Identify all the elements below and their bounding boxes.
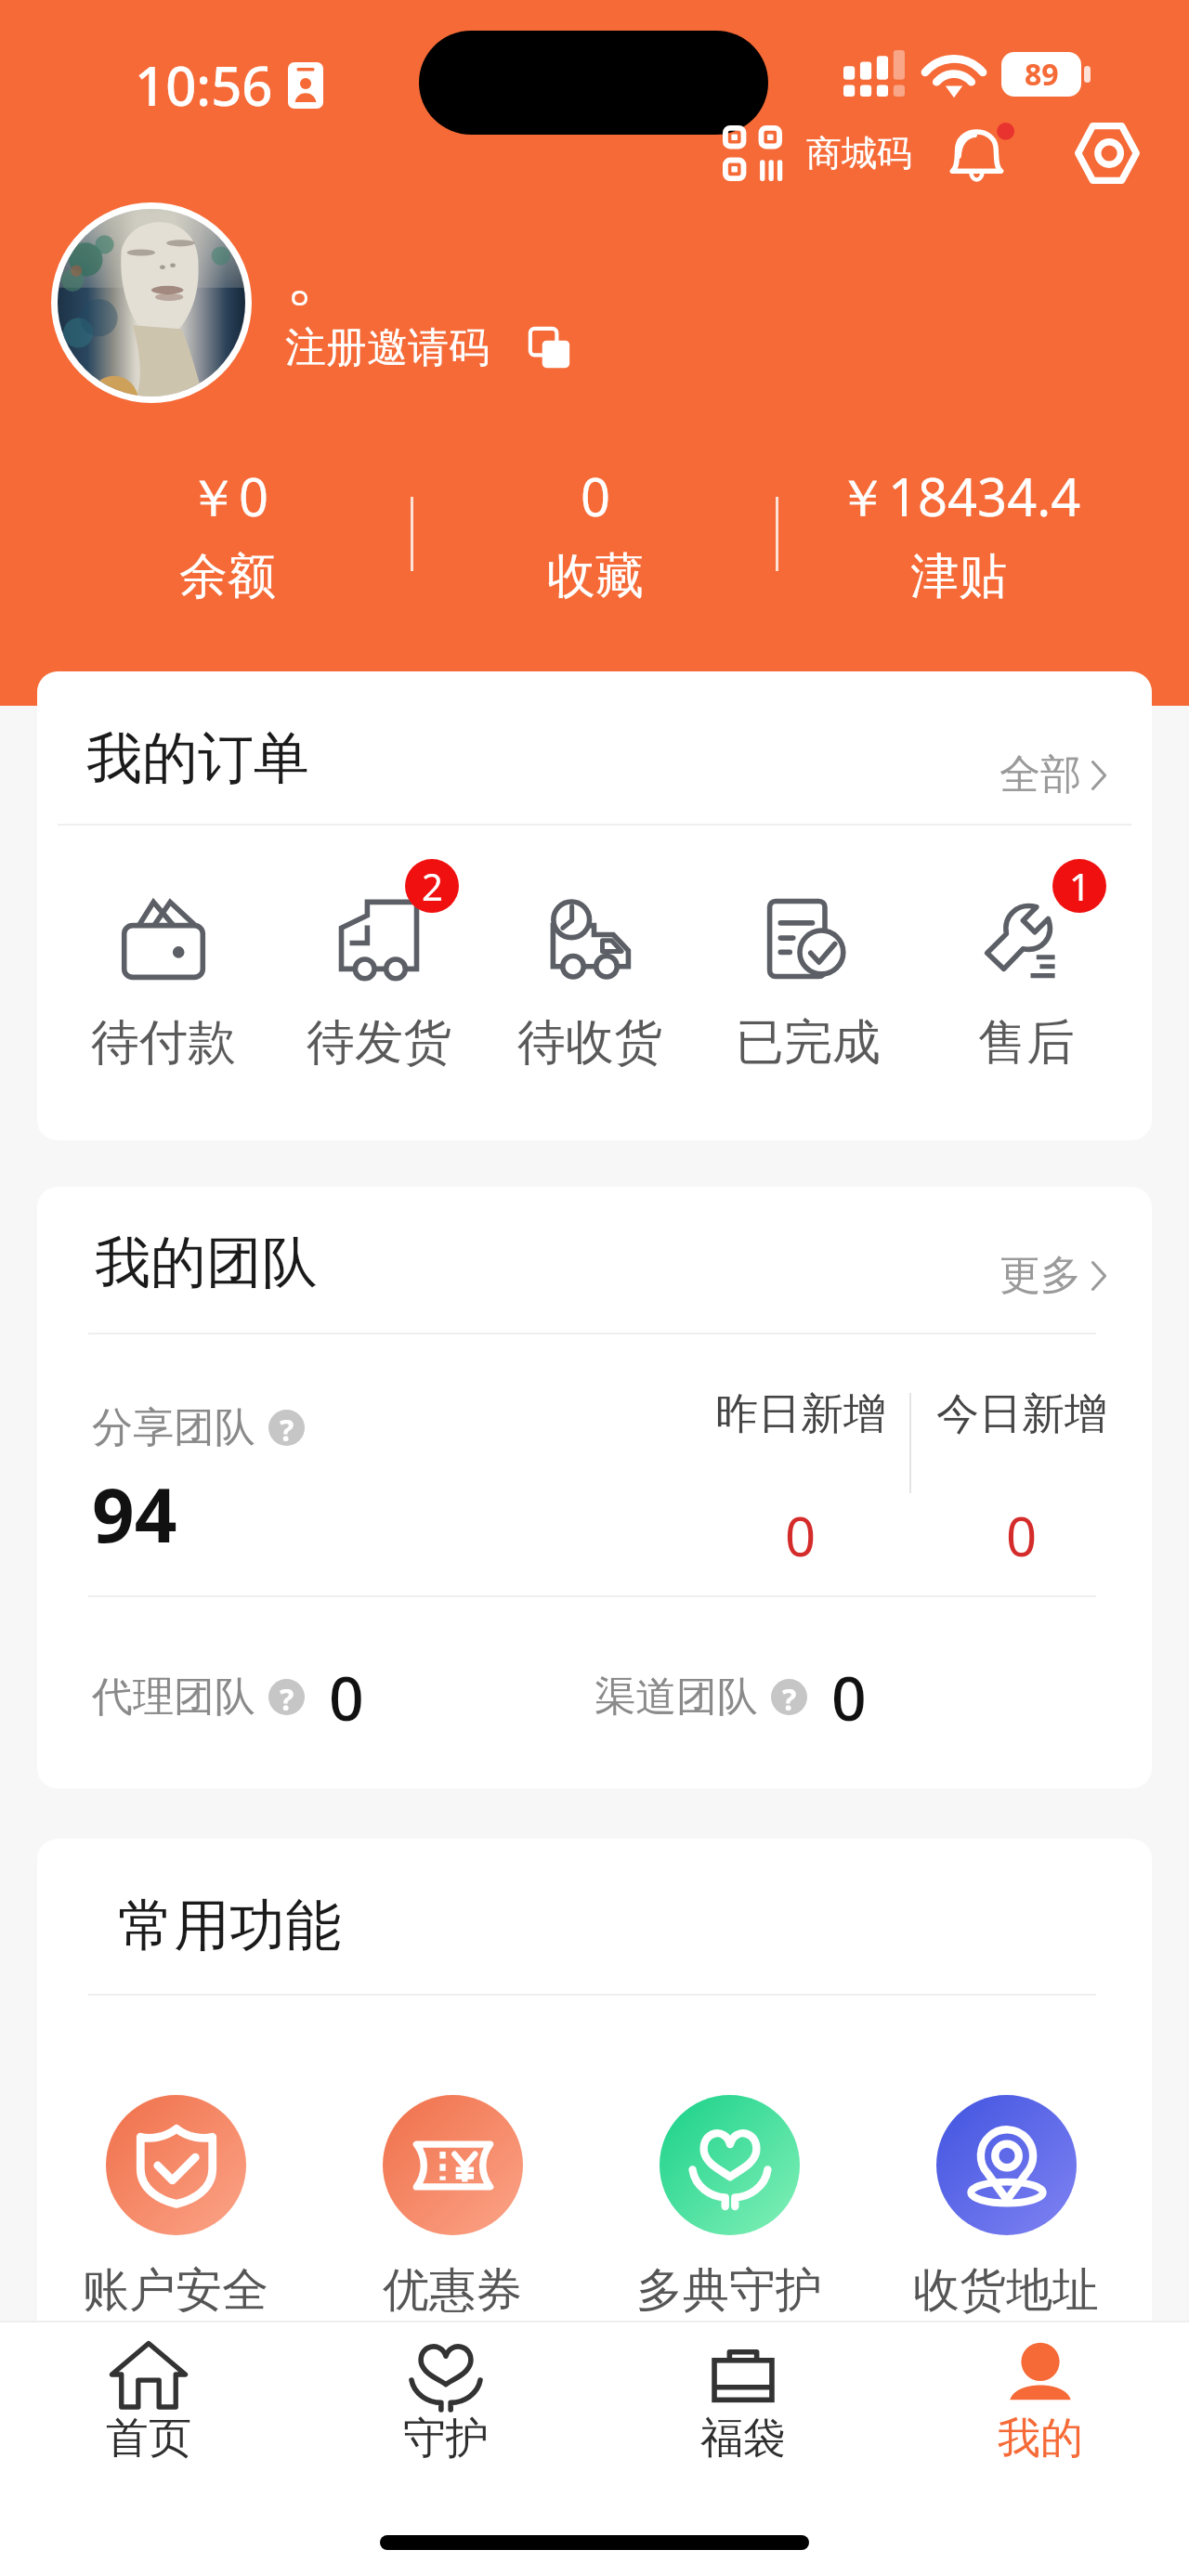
button[interactable]: Avatar	[58, 209, 245, 397]
button[interactable]: 1	[924, 857, 1129, 1099]
staticText: 代理团队	[92, 1672, 255, 1723]
button[interactable]: 我的	[892, 2322, 1189, 2465]
button[interactable]: 全部	[1000, 749, 1109, 800]
button[interactable]: 优惠券	[322, 2095, 582, 2320]
staticText: 收藏	[547, 546, 644, 607]
button[interactable]: 商城码	[710, 114, 925, 192]
button[interactable]: ￥0	[79, 461, 376, 607]
button[interactable]: Settings	[1066, 112, 1148, 194]
staticText: 待付款	[91, 1012, 236, 1073]
staticText: 注册邀请码	[285, 322, 490, 373]
button[interactable]: 收货地址	[876, 2095, 1136, 2320]
staticText: 我的订单	[86, 723, 309, 794]
button[interactable]: ￥18434.4	[810, 461, 1107, 607]
staticText: 福袋	[700, 2412, 786, 2465]
staticText: 售后	[978, 1012, 1075, 1073]
staticText: 收货地址	[913, 2261, 1099, 2320]
staticText: 余额	[179, 546, 276, 607]
staticText: ?	[280, 1679, 294, 1715]
staticText: 更多	[1000, 1250, 1081, 1301]
staticText: 1	[1069, 861, 1091, 911]
button[interactable]: 已完成	[706, 857, 910, 1099]
staticText: 0	[1006, 1499, 1038, 1572]
button[interactable]: 首页	[0, 2322, 297, 2465]
staticText: ?	[280, 1410, 294, 1446]
staticText: 我的团队	[95, 1228, 318, 1298]
staticText: 渠道团队	[594, 1672, 758, 1723]
staticText: 昨日新增	[715, 1387, 886, 1441]
staticText: 津贴	[910, 546, 1007, 607]
staticText: 待发货	[307, 1012, 451, 1073]
staticText: 今日新增	[936, 1387, 1107, 1441]
staticText: 0	[785, 1499, 817, 1572]
staticText: 账户安全	[83, 2261, 268, 2320]
staticText: 10:56	[135, 48, 273, 122]
button[interactable]: 待收货	[488, 857, 692, 1099]
staticText: ?	[782, 1679, 797, 1715]
staticText: 2	[422, 861, 443, 911]
button[interactable]: 更多	[1000, 1250, 1109, 1301]
staticText: 多典守护	[636, 2261, 822, 2320]
button[interactable]: 注册邀请码	[285, 322, 571, 373]
staticText: 分享团队	[92, 1402, 255, 1453]
staticText: 商城码	[806, 131, 912, 176]
button[interactable]: 0	[447, 461, 744, 607]
staticText: ￥0	[187, 461, 269, 531]
button[interactable]: 2	[277, 857, 481, 1099]
staticText: 首页	[106, 2412, 191, 2465]
staticText: 优惠券	[383, 2261, 522, 2320]
staticText: 我的	[998, 2412, 1083, 2465]
button[interactable]: 福袋	[594, 2322, 892, 2465]
staticText: 常用功能	[118, 1891, 341, 1961]
staticText: ￥18434.4	[836, 461, 1081, 531]
staticText: 94	[92, 1463, 177, 1564]
staticText: 0	[329, 1655, 364, 1738]
staticText: 待收货	[517, 1012, 662, 1073]
staticText: 守护	[403, 2412, 489, 2465]
staticText: 0	[831, 1655, 867, 1738]
button[interactable]: 多典守护	[599, 2095, 859, 2320]
button[interactable]: 守护	[297, 2322, 594, 2465]
staticText: 。	[285, 232, 354, 319]
button[interactable]: 待付款	[61, 857, 266, 1099]
button[interactable]: Notifications	[942, 112, 1024, 194]
staticText: 89	[1025, 54, 1059, 95]
button[interactable]: 账户安全	[46, 2095, 306, 2320]
staticText: 0	[581, 461, 611, 531]
staticText: 已完成	[736, 1012, 881, 1073]
staticText: 全部	[1000, 749, 1081, 800]
